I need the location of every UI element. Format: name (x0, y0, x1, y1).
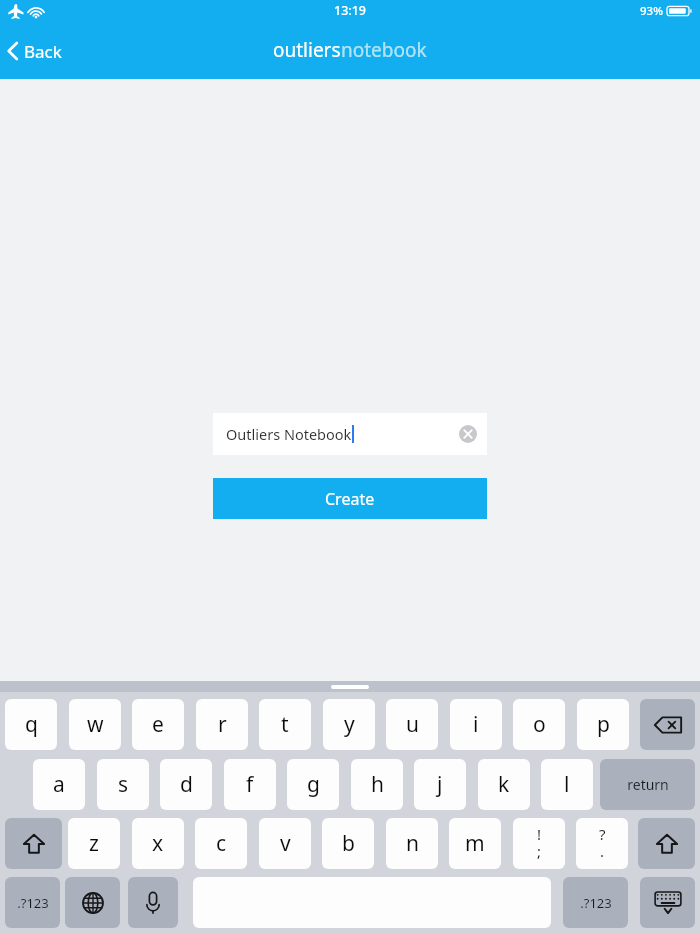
button[interactable]: Shift (638, 818, 695, 869)
staticText: 93% (640, 3, 663, 19)
staticText: a (53, 770, 65, 799)
staticText: c (216, 829, 227, 858)
button[interactable]: l (541, 759, 593, 810)
button[interactable]: Change keyboard (65, 877, 120, 928)
staticText: m (465, 829, 485, 858)
button[interactable]: j (414, 759, 466, 810)
button[interactable]: Backspace (640, 699, 695, 750)
button[interactable]: s (97, 759, 149, 810)
button[interactable]: k (478, 759, 530, 810)
staticText: d (180, 770, 193, 799)
staticText: . (600, 841, 605, 861)
staticText: ? (599, 824, 606, 844)
button[interactable]: c (195, 818, 247, 869)
button[interactable]: o (513, 699, 565, 750)
button[interactable]: v (259, 818, 311, 869)
button[interactable]: f (224, 759, 276, 810)
button[interactable]: Shift (5, 818, 62, 869)
button[interactable]: d (160, 759, 212, 810)
staticText: x (152, 829, 164, 858)
button[interactable]: u (386, 699, 438, 750)
staticText: s (118, 770, 129, 799)
staticText: q (25, 710, 38, 739)
staticText: t (281, 710, 289, 739)
button[interactable]: e (132, 699, 184, 750)
staticText: .?123 (17, 894, 49, 912)
button[interactable]: .?123 (5, 877, 60, 928)
staticText: outliers (273, 37, 341, 63)
button[interactable]: i (450, 699, 502, 750)
staticText: Back (24, 40, 62, 63)
button[interactable]: Dictate (128, 877, 178, 928)
staticText: ! (537, 824, 542, 844)
staticText: f (246, 770, 254, 799)
staticText: i (473, 710, 479, 739)
staticText: p (597, 710, 610, 739)
staticText: u (406, 710, 419, 739)
staticText: n (406, 829, 419, 858)
button[interactable]: ? (576, 818, 628, 869)
staticText: b (342, 829, 355, 858)
staticText: k (498, 770, 510, 799)
button[interactable]: y (323, 699, 375, 750)
staticText: .?123 (580, 894, 612, 912)
staticText: v (280, 829, 291, 858)
button[interactable]: ! (513, 818, 565, 869)
button[interactable]: .?123 (563, 877, 628, 928)
staticText: y (344, 710, 355, 739)
staticText: Create (325, 488, 375, 510)
button[interactable]: p (577, 699, 629, 750)
button[interactable]: g (287, 759, 339, 810)
button[interactable]: w (69, 699, 121, 750)
button[interactable]: a (33, 759, 85, 810)
button[interactable]: n (386, 818, 438, 869)
staticText: z (89, 829, 99, 858)
staticText: w (87, 710, 104, 739)
staticText: j (437, 770, 443, 799)
staticText: 13:19 (334, 2, 367, 19)
staticText: ; (537, 841, 542, 861)
button[interactable]: t (259, 699, 311, 750)
button[interactable]: z (68, 818, 120, 869)
button[interactable]: m (449, 818, 501, 869)
button[interactable]: x (132, 818, 184, 869)
button[interactable]: Create (213, 478, 487, 519)
staticText: notebook (341, 37, 427, 63)
staticText: g (307, 770, 320, 799)
button[interactable]: r (196, 699, 248, 750)
staticText: return (627, 775, 669, 794)
button[interactable]: Clear text (459, 425, 477, 443)
button[interactable]: h (351, 759, 403, 810)
button[interactable]: b (322, 818, 374, 869)
staticText: h (371, 770, 384, 799)
button[interactable]: Hide keyboard (640, 877, 695, 928)
staticText: e (152, 710, 164, 739)
staticText: l (564, 770, 570, 799)
button[interactable]: Back (0, 30, 72, 72)
staticText: Outliers Notebook (226, 424, 352, 444)
staticText: o (533, 710, 546, 739)
button[interactable]: Outliers Notebook (213, 413, 487, 455)
staticText: r (218, 710, 227, 739)
button[interactable]: return (600, 759, 695, 810)
button[interactable]: q (5, 699, 57, 750)
